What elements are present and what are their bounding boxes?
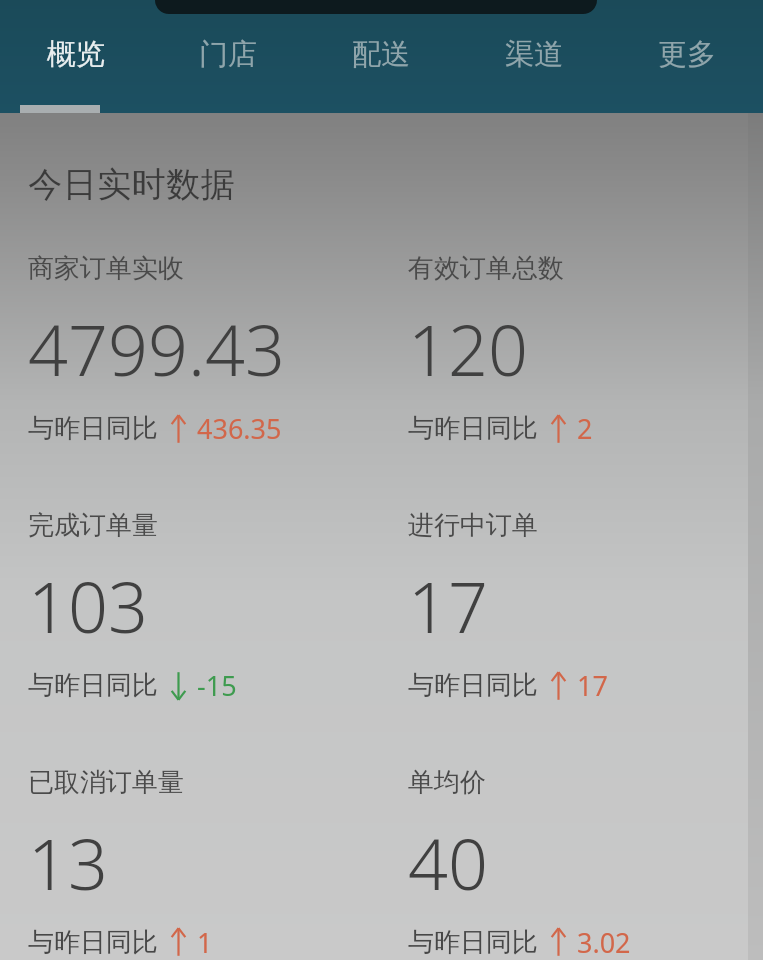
staticText: 进行中订单 [408, 509, 538, 542]
staticText: -15 [197, 667, 237, 704]
staticText: 配送 [352, 36, 410, 73]
button[interactable]: 已取消订单量 [28, 766, 381, 960]
staticText: 单均价 [408, 766, 486, 799]
staticText: 有效订单总数 [408, 252, 564, 285]
staticText: 13 [28, 815, 108, 910]
staticText: 已取消订单量 [28, 766, 184, 799]
staticText: 120 [408, 301, 528, 396]
staticText: 3.02 [577, 924, 631, 960]
staticText: 40 [408, 815, 488, 910]
staticText: 渠道 [505, 36, 563, 73]
button[interactable]: 概览 [0, 36, 152, 88]
other: Decrease [170, 671, 187, 701]
staticText: 今日实时数据 [28, 163, 235, 206]
staticText: 与昨日同比 [408, 926, 538, 959]
staticText: 2 [577, 410, 593, 447]
staticText: 17 [408, 558, 488, 653]
other: Increase [550, 414, 567, 444]
button[interactable]: 渠道 [457, 36, 610, 88]
button[interactable]: 更多 [610, 36, 763, 88]
other: Increase [170, 927, 187, 957]
staticText: 103 [28, 558, 148, 653]
staticText: 更多 [658, 36, 716, 73]
other: Increase [550, 927, 567, 957]
staticText: 17 [577, 667, 608, 704]
other: Increase [170, 414, 187, 444]
staticText: 完成订单量 [28, 509, 158, 542]
button[interactable]: 商家订单实收 [28, 252, 381, 447]
staticText: 门店 [199, 36, 257, 73]
staticText: 概览 [47, 36, 105, 73]
button[interactable]: 单均价 [408, 766, 763, 960]
staticText: 4799.43 [28, 301, 285, 396]
button[interactable]: 配送 [304, 36, 457, 88]
button[interactable]: 完成订单量 [28, 509, 381, 704]
button[interactable]: 进行中订单 [408, 509, 763, 704]
other: Increase [550, 671, 567, 701]
staticText: 与昨日同比 [408, 669, 538, 702]
staticText: 商家订单实收 [28, 252, 184, 285]
staticText: 与昨日同比 [28, 926, 158, 959]
button[interactable]: 有效订单总数 [408, 252, 763, 447]
button[interactable]: 门店 [152, 36, 304, 88]
staticText: 与昨日同比 [28, 412, 158, 445]
staticText: 1 [197, 924, 213, 960]
staticText: 与昨日同比 [408, 412, 538, 445]
staticText: 436.35 [197, 410, 282, 447]
staticText: 与昨日同比 [28, 669, 158, 702]
